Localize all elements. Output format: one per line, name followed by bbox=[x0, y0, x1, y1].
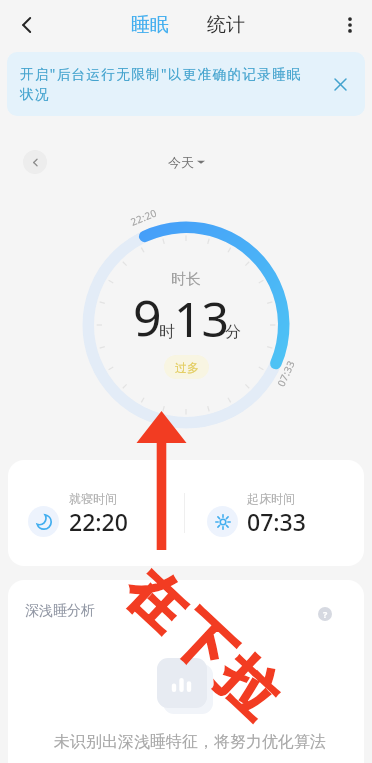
staticText: 统计 bbox=[207, 13, 245, 37]
staticText: 9 bbox=[133, 283, 162, 351]
staticText: 过多 bbox=[175, 360, 199, 375]
button[interactable]: 睡眠 bbox=[123, 7, 177, 43]
button[interactable]: 统计 bbox=[199, 7, 253, 43]
button[interactable]: 开启"后台运行无限制"以更准确的记录睡眠状况 bbox=[7, 52, 365, 116]
staticText: ? bbox=[323, 608, 328, 620]
staticText: 22:20 bbox=[69, 506, 128, 537]
staticText: 07:33 bbox=[247, 506, 306, 537]
staticText: 开启"后台运行无限制"以更准确的记录睡眠状况 bbox=[20, 65, 308, 103]
button[interactable]: Close bbox=[328, 72, 352, 96]
staticText: 22:20 bbox=[128, 205, 160, 229]
button[interactable]: More options bbox=[332, 7, 368, 43]
staticText: 时 bbox=[159, 322, 175, 342]
staticText: 分 bbox=[225, 322, 241, 342]
staticText: 在下拉 bbox=[109, 553, 296, 735]
button[interactable]: 今天 bbox=[162, 148, 211, 176]
staticText: 07:33 bbox=[274, 357, 298, 389]
button[interactable]: Help bbox=[318, 607, 332, 621]
staticText: 深浅睡分析 bbox=[25, 602, 95, 620]
staticText: 起床时间 bbox=[247, 491, 295, 506]
staticText: 13 bbox=[174, 286, 229, 351]
button[interactable]: Previous day bbox=[23, 150, 47, 174]
staticText: 睡眠 bbox=[131, 13, 169, 37]
button[interactable]: Back bbox=[9, 7, 45, 43]
staticText: 未识别出深浅睡特征，将努力优化算法 bbox=[54, 732, 326, 752]
staticText: 就寝时间 bbox=[69, 491, 117, 506]
staticText: 今天 bbox=[168, 154, 194, 170]
staticText: 时长 bbox=[171, 270, 201, 289]
